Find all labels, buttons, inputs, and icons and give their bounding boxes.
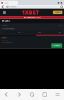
button[interactable]: Back — [1, 5, 4, 9]
button[interactable]: 2 — [43, 30, 62, 34]
button[interactable]: Search — [26, 90, 38, 98]
button[interactable]: Account — [61, 6, 63, 8]
staticText: 2.10 — [17, 31, 20, 33]
button[interactable]: Forward — [13, 90, 26, 98]
staticText: 3.40 — [38, 31, 41, 33]
staticText: WELCOME BONUS +100% — [23, 16, 40, 18]
button[interactable]: 1XBET — [21, 9, 38, 16]
staticText: 3.05 — [58, 31, 61, 33]
staticText: SIGN UP — [54, 45, 60, 46]
button[interactable]: WELCOME BONUS +100% — [0, 16, 64, 19]
button[interactable]: Menu — [51, 90, 64, 98]
staticText: X — [23, 31, 24, 33]
staticText: Arsenal — Chelsea — [2, 28, 15, 30]
button[interactable]: X — [22, 30, 42, 34]
button[interactable]: Menu — [2, 10, 7, 15]
staticText: LOG IN — [55, 11, 60, 13]
staticText: SPORT — [2, 19, 11, 23]
staticText: BONUS — [2, 37, 7, 39]
staticText: 1xbet.com — [9, 6, 16, 8]
staticText: on first deposit — [2, 41, 12, 43]
button[interactable]: SIGN UP — [51, 43, 62, 48]
button[interactable]: Back — [0, 90, 13, 98]
staticText: 1XBET — [21, 9, 38, 16]
button[interactable]: 1 — [2, 30, 21, 34]
staticText: 21:30 — [58, 25, 62, 26]
button[interactable]: Tabs — [38, 90, 51, 98]
button[interactable]: LOG IN — [53, 11, 62, 14]
staticText: Football — [2, 25, 7, 26]
staticText: up to 100€ — [2, 39, 9, 41]
staticText: 1xbet — [4, 2, 8, 4]
